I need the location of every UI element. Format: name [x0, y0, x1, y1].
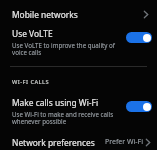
other: Open network preferences — [144, 137, 152, 148]
button[interactable]: Use VoLTE toggle, on — [126, 32, 152, 43]
button[interactable]: Make calls using Wi-Fi — [0, 97, 157, 126]
staticText: Use VoLTE — [12, 28, 53, 39]
button[interactable]: Network preferences — [0, 134, 157, 150]
staticText: WI-FI CALLS — [12, 78, 50, 86]
staticText: Use Wi-Fi to make and receive calls when… — [12, 110, 121, 126]
other: Open mobile networks — [142, 9, 150, 20]
staticText: Network preferences — [12, 137, 105, 148]
staticText: Make calls using Wi-Fi — [12, 97, 99, 108]
button[interactable]: Mobile networks — [0, 0, 157, 28]
button[interactable]: Make calls using Wi-Fi toggle, on — [126, 101, 152, 112]
staticText: Prefer Wi-Fi — [105, 137, 144, 147]
button[interactable]: Use VoLTE — [0, 28, 157, 57]
staticText: Mobile networks — [12, 9, 142, 20]
staticText: Use VoLTE to improve the quality of voic… — [12, 41, 121, 57]
